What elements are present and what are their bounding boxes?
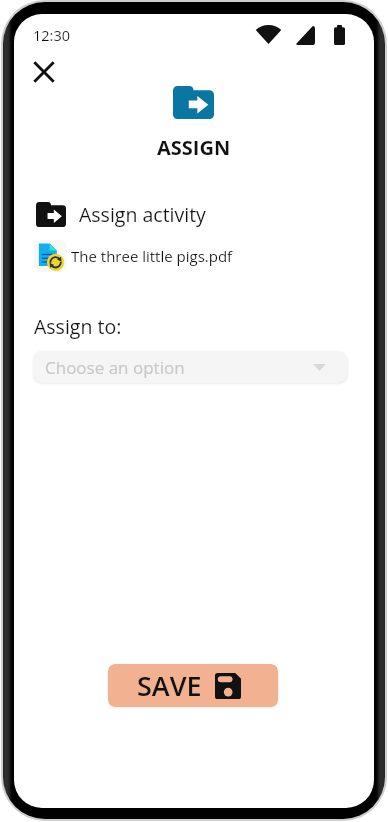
staticText: The three little pigs.pdf [71,246,233,266]
button[interactable]: Assign activity [36,200,206,228]
button[interactable]: The three little pigs.pdf [34,240,233,272]
staticText: Assign activity [79,201,206,228]
staticText: 12:30 [33,26,70,46]
button[interactable]: Choose an option [33,351,347,383]
staticText: Choose an option [45,356,185,379]
staticText: SAVE [137,667,202,704]
staticText: ASSIGN [157,134,231,161]
button[interactable]: Close [24,52,64,92]
staticText: Assign to: [34,313,122,340]
button[interactable]: SAVE [108,664,278,707]
